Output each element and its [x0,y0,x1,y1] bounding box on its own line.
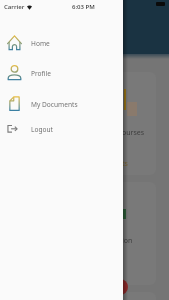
button[interactable]: My Documents [0,90,123,116]
staticText: Logout [31,125,53,134]
button[interactable]: Home [0,29,123,55]
staticText: ts [122,159,128,169]
staticText: Home [31,39,50,48]
other: Home [7,35,22,50]
button[interactable] [100,72,156,175]
staticText: ourses [122,128,145,138]
button[interactable] [100,182,156,285]
staticText: Profile [31,69,51,78]
other: My Documents [7,96,22,111]
staticText: 6:03 PM [72,3,95,11]
staticText: Carrier [4,3,25,11]
button[interactable]: Logout [0,115,123,141]
staticText: My Documents [31,100,78,109]
staticText: ion [122,236,133,246]
other: Wifi signal [27,5,32,10]
button[interactable]: Profile [0,59,123,85]
other: Logout [6,121,21,136]
button[interactable] [100,292,156,300]
other: Profile [7,65,22,80]
